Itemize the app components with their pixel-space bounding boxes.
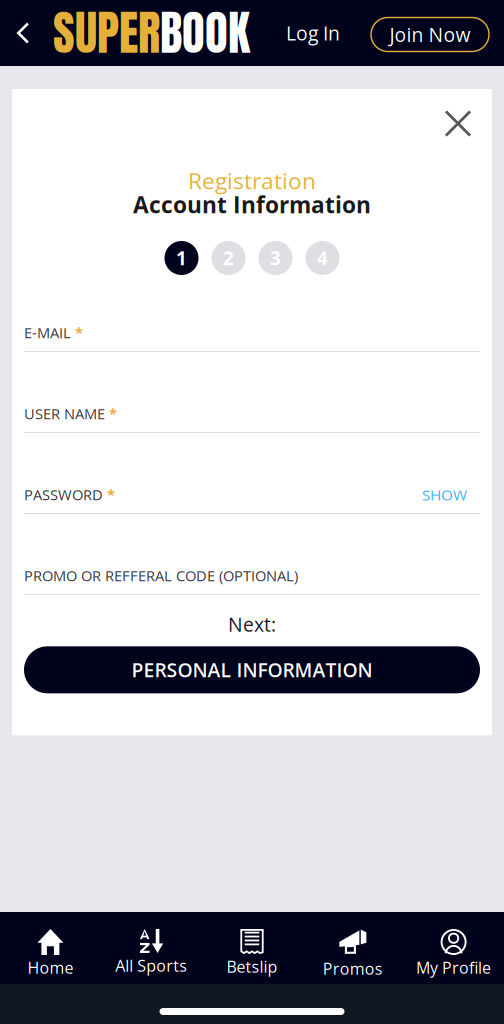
staticText: My Profile <box>416 957 491 978</box>
button[interactable]: Close <box>436 101 480 145</box>
staticText: 2 <box>223 245 234 271</box>
staticText: USER NAME <box>24 403 105 423</box>
staticText: All Sports <box>115 955 187 976</box>
button[interactable]: Join Now <box>371 14 489 51</box>
staticText: PERSONAL INFORMATION <box>131 657 372 683</box>
staticText: Account Information <box>133 189 371 220</box>
staticText: BOOK <box>160 0 250 68</box>
button[interactable]: All Sports <box>101 913 202 983</box>
staticText: PROMO OR REFFERAL CODE (OPTIONAL) <box>24 565 298 585</box>
button[interactable]: SHOW <box>422 484 480 505</box>
staticText: SUPER <box>53 0 160 68</box>
staticText: 4 <box>317 245 328 271</box>
staticText: Home <box>27 957 73 978</box>
button[interactable]: Promos <box>302 913 403 983</box>
staticText: * <box>103 484 115 504</box>
staticText: 3 <box>270 245 281 271</box>
button[interactable]: Betslip <box>202 913 302 983</box>
staticText: 1 <box>176 245 187 271</box>
button[interactable]: Home <box>0 913 101 983</box>
staticText: PASSWORD <box>24 484 103 504</box>
button[interactable]: My Profile <box>403 913 504 983</box>
staticText: * <box>105 403 117 423</box>
staticText: Join Now <box>389 21 470 48</box>
staticText: Registration <box>188 165 316 196</box>
staticText: Next: <box>228 611 276 637</box>
staticText: E-MAIL <box>24 322 71 342</box>
staticText: SHOW <box>422 484 467 505</box>
staticText: Promos <box>323 958 383 979</box>
staticText: * <box>71 322 83 342</box>
staticText: Betslip <box>226 956 277 977</box>
button[interactable]: Log In <box>274 7 352 59</box>
button[interactable]: Back <box>8 0 38 66</box>
staticText: Log In <box>286 20 340 46</box>
button[interactable]: PERSONAL INFORMATION <box>24 646 480 693</box>
